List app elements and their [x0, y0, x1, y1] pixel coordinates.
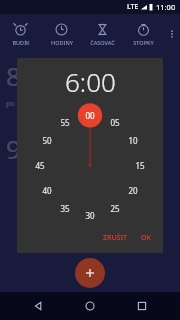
staticText: 9 [6, 131, 21, 166]
button[interactable]: HODINY [41, 14, 82, 54]
button[interactable]: BUDÍK [0, 14, 41, 54]
staticText: ČASOVAČ [90, 39, 115, 46]
staticText: HODINY [51, 39, 73, 46]
staticText: LTE [127, 2, 139, 12]
staticText: 11:00 [156, 2, 176, 12]
staticText: 20 [128, 185, 138, 196]
staticText: 50 [42, 135, 52, 146]
staticText: 8 [6, 58, 21, 93]
button[interactable]: OK [137, 229, 155, 247]
staticText: 00 [85, 110, 95, 121]
button[interactable]: Add alarm [75, 258, 105, 288]
button[interactable]: Recents [128, 292, 156, 320]
staticText: OK [141, 233, 151, 243]
staticText: STOPKY [133, 39, 154, 46]
staticText: 15 [135, 160, 145, 171]
staticText: 55 [60, 117, 70, 128]
button[interactable]: More options [164, 14, 180, 54]
staticText: 40 [42, 185, 52, 196]
staticText: BUDÍK [12, 39, 30, 46]
staticText: 30 [85, 210, 95, 221]
staticText: 05 [110, 117, 120, 128]
staticText: 10 [128, 135, 138, 146]
staticText: 35 [60, 203, 70, 214]
staticText: 25 [110, 203, 120, 214]
button[interactable]: ČASOVAČ [82, 14, 123, 54]
staticText: 45 [35, 160, 45, 171]
staticText: po [6, 99, 15, 109]
button[interactable]: Back [24, 292, 52, 320]
staticText: 6:00 [65, 64, 116, 99]
staticText: ZRUŠIT [103, 233, 127, 243]
button[interactable]: ZRUŠIT [99, 229, 131, 247]
button[interactable]: STOPKY [123, 14, 164, 54]
button[interactable]: Home [76, 292, 104, 320]
